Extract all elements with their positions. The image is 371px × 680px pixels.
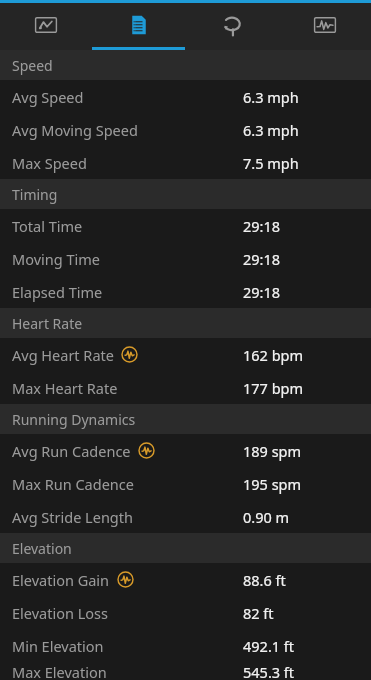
button[interactable]: Avg Stride Length [0,500,371,533]
staticText: Avg Heart Rate [12,345,114,365]
button[interactable]: Charts [278,3,371,47]
button[interactable]: Max Elevation [0,662,371,680]
staticText: 0.90 m [243,507,290,527]
button[interactable]: Max Run Cadence [0,467,371,500]
staticText: Elevation Gain [12,570,110,590]
staticText: Max Elevation [12,662,107,680]
staticText: Max Speed [12,153,87,173]
staticText: Avg Moving Speed [12,120,138,140]
staticText: 6.3 mph [243,87,299,107]
staticText: Speed [12,56,53,75]
staticText: Heart Rate [12,314,83,333]
button[interactable]: Elevation Loss [0,596,371,629]
button[interactable]: Avg Heart Rate [0,338,371,371]
button[interactable]: Avg Speed [0,80,371,113]
button[interactable]: Map [0,3,92,47]
staticText: 177 bpm [243,378,304,398]
button[interactable]: Laps [185,3,278,47]
staticText: Max Heart Rate [12,378,118,398]
staticText: Avg Stride Length [12,507,133,527]
staticText: Min Elevation [12,636,104,656]
staticText: Timing [12,185,58,204]
staticText: Elapsed Time [12,282,103,302]
staticText: 82 ft [243,603,274,623]
staticText: Avg Speed [12,87,84,107]
button[interactable]: Avg Moving Speed [0,113,371,146]
staticText: 7.5 mph [243,153,299,173]
staticText: Total Time [12,216,83,236]
staticText: 88.6 ft [243,570,286,590]
button[interactable]: Moving Time [0,242,371,275]
staticText: 6.3 mph [243,120,299,140]
staticText: Avg Run Cadence [12,441,131,461]
staticText: 189 spm [243,441,302,461]
button[interactable]: Max Speed [0,146,371,179]
staticText: 545.3 ft [243,662,295,680]
button[interactable]: Elapsed Time [0,275,371,308]
staticText: 29:18 [243,282,281,302]
staticText: 195 spm [243,474,302,494]
button[interactable]: Details [92,3,185,47]
button[interactable]: Max Heart Rate [0,371,371,404]
staticText: 29:18 [243,216,281,236]
staticText: 29:18 [243,249,281,269]
button[interactable]: Avg Run Cadence [0,434,371,467]
button[interactable]: Total Time [0,209,371,242]
staticText: Elevation Loss [12,603,108,623]
staticText: Elevation [12,539,72,558]
staticText: 162 bpm [243,345,304,365]
button[interactable]: Min Elevation [0,629,371,662]
button[interactable]: Elevation Gain [0,563,371,596]
staticText: Max Run Cadence [12,474,134,494]
staticText: Moving Time [12,249,100,269]
staticText: Running Dynamics [12,410,136,429]
staticText: 492.1 ft [243,636,295,656]
